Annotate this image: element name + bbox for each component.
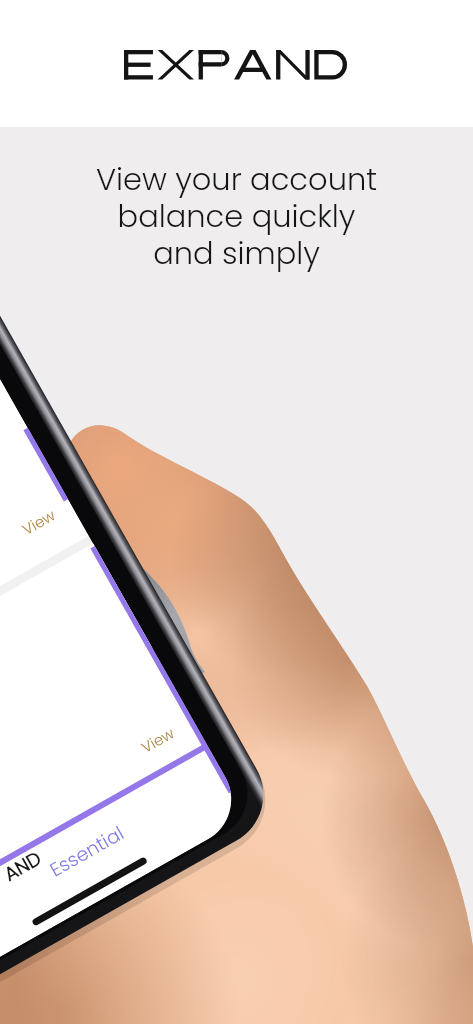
staticText: View bbox=[18, 504, 59, 540]
staticText: View bbox=[137, 722, 178, 758]
staticText: View your account balance quickly and si… bbox=[0, 158, 473, 275]
button[interactable]: EXPAND bbox=[0, 0, 473, 127]
staticText: Essential bbox=[45, 819, 130, 883]
staticText: AND bbox=[0, 845, 46, 887]
